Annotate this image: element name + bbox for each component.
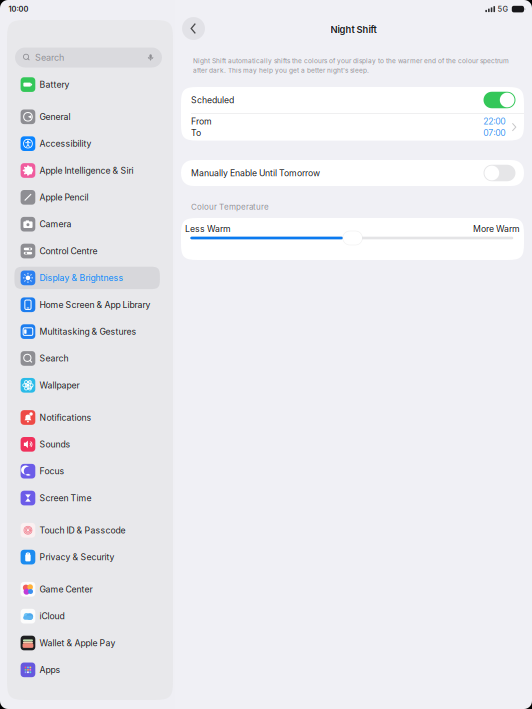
staticText: Control Centre — [39, 246, 97, 256]
button[interactable]: Apple Intelligence & Siri — [14, 159, 160, 182]
button[interactable]: Touch ID & Passcode — [14, 519, 160, 541]
staticText: Apple Pencil — [39, 192, 88, 203]
button[interactable]: Privacy & Security — [14, 546, 160, 568]
staticText: Battery — [39, 79, 69, 90]
button[interactable]: Search — [15, 47, 162, 67]
staticText: General — [39, 112, 70, 122]
staticText: Scheduled — [191, 95, 234, 105]
staticText: To — [191, 128, 201, 138]
staticText: Manually Enable Until Tomorrow — [191, 168, 320, 178]
button[interactable]: Multitasking & Gestures — [14, 320, 160, 343]
staticText: Wallpaper — [39, 380, 79, 391]
button[interactable]: Turn on — [483, 165, 515, 181]
button[interactable]: Colour temperature — [190, 231, 513, 245]
staticText: Display & Brightness — [39, 273, 123, 283]
staticText: 10:00 — [8, 4, 28, 13]
staticText: Multitasking & Gestures — [39, 326, 136, 337]
button[interactable]: iCloud — [14, 605, 160, 627]
button[interactable]: Accessibility — [14, 132, 160, 155]
button[interactable]: Wallet & Apple Pay — [14, 632, 160, 654]
staticText: Apple Intelligence & Siri — [39, 165, 133, 176]
button[interactable]: Home Screen & App Library — [14, 293, 160, 316]
button[interactable]: General — [14, 105, 160, 128]
staticText: Search — [39, 353, 68, 364]
staticText: Privacy & Security — [39, 552, 114, 562]
staticText: Search — [35, 52, 64, 63]
button[interactable]: Turn off — [483, 92, 515, 108]
staticText: Screen Time — [39, 493, 91, 503]
button[interactable]: Apple Pencil — [14, 186, 160, 209]
button[interactable]: Battery — [14, 73, 160, 96]
button[interactable]: Camera — [14, 213, 160, 235]
staticText: Less Warm — [185, 223, 231, 234]
button[interactable]: Wallpaper — [14, 374, 160, 397]
staticText: From — [191, 116, 212, 127]
staticText: 5G — [497, 5, 508, 14]
staticText: Home Screen & App Library — [39, 299, 150, 310]
staticText: Apps — [39, 665, 60, 675]
button[interactable]: Control Centre — [14, 240, 160, 262]
staticText: Colour Temperature — [191, 202, 269, 212]
staticText: Night Shift automatically shifts the col… — [193, 57, 509, 65]
button[interactable]: Sounds — [14, 433, 160, 456]
staticText: 07:00 — [483, 128, 505, 138]
button[interactable]: Focus — [14, 460, 160, 482]
button[interactable]: Search — [14, 347, 160, 370]
button[interactable]: Apps — [14, 659, 160, 681]
button[interactable]: Screen Time — [14, 487, 160, 509]
staticText: More Warm — [473, 223, 520, 234]
staticText: Notifications — [39, 412, 91, 423]
staticText: Focus — [39, 466, 64, 476]
staticText: Camera — [39, 219, 71, 229]
button[interactable]: Game Center — [14, 578, 160, 601]
staticText: Night Shift — [330, 24, 376, 35]
staticText: after dark. This may help you get a bett… — [193, 66, 369, 74]
staticText: 22:00 — [483, 116, 505, 127]
staticText: Accessibility — [39, 138, 91, 149]
staticText: Game Center — [39, 584, 92, 595]
staticText: Touch ID & Passcode — [39, 525, 125, 535]
staticText: Sounds — [39, 439, 70, 450]
button[interactable]: Notifications — [14, 406, 160, 429]
staticText: Wallet & Apple Pay — [39, 638, 115, 648]
button[interactable]: Display & Brightness — [14, 267, 160, 289]
button[interactable]: Back — [182, 17, 205, 40]
staticText: iCloud — [39, 611, 64, 621]
